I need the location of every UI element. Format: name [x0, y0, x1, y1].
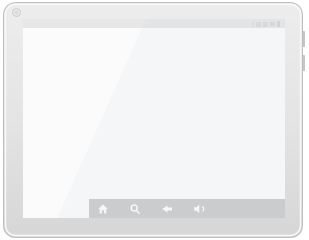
- button[interactable]: Home: [93, 199, 113, 218]
- button[interactable]: Search: [125, 199, 145, 218]
- button[interactable]: Volume: [189, 199, 209, 218]
- button[interactable]: Back: [157, 199, 177, 218]
